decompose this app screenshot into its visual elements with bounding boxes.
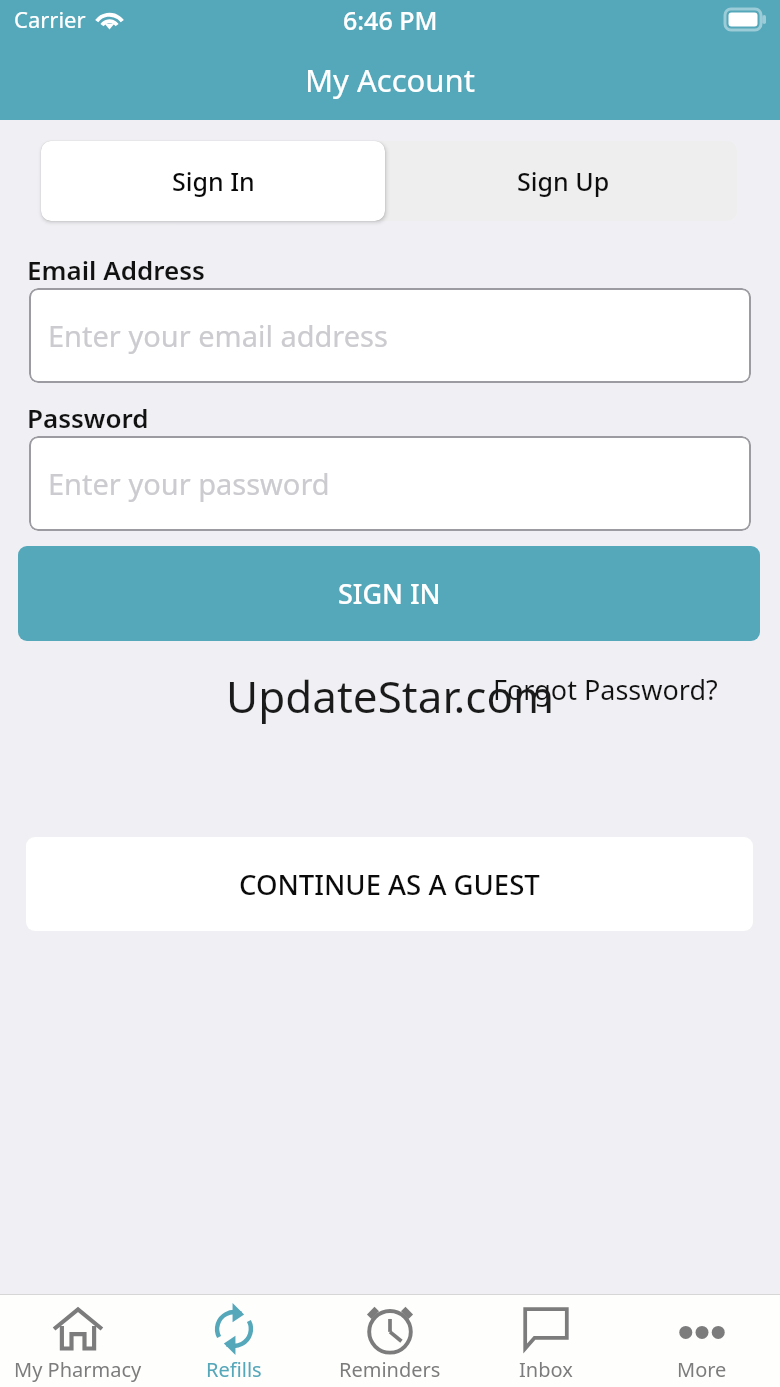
staticText: Refills xyxy=(206,1356,262,1383)
button[interactable]: Sign Up xyxy=(389,141,737,221)
button[interactable]: Forgot Password? xyxy=(493,671,718,708)
staticText: Email Address xyxy=(27,252,205,287)
staticText: Sign In xyxy=(172,164,255,198)
staticText: 6:46 PM xyxy=(343,3,438,37)
button[interactable]: Inbox xyxy=(468,1295,624,1387)
button[interactable]: More xyxy=(624,1295,780,1387)
staticText: Sign Up xyxy=(517,164,610,198)
staticText: My Pharmacy xyxy=(14,1356,142,1383)
staticText: Inbox xyxy=(519,1356,573,1383)
staticText: CONTINUE AS A GUEST xyxy=(239,866,540,903)
button[interactable] xyxy=(41,141,389,221)
staticText: Password xyxy=(27,400,149,435)
other: Battery full xyxy=(725,9,766,30)
other: Wi-Fi signal xyxy=(94,7,125,31)
staticText: SIGN IN xyxy=(338,575,441,612)
button[interactable]: Refills xyxy=(156,1295,312,1387)
staticText: Enter your email address xyxy=(48,316,388,355)
staticText: Reminders xyxy=(339,1356,441,1383)
staticText: More xyxy=(677,1356,727,1383)
button[interactable]: My Pharmacy xyxy=(0,1295,156,1387)
staticText: Carrier xyxy=(14,4,86,34)
button[interactable]: CONTINUE AS A GUEST xyxy=(26,837,753,931)
staticText: My Account xyxy=(305,59,475,101)
button[interactable]: Sign In xyxy=(41,141,385,221)
button[interactable]: SIGN IN xyxy=(18,546,760,641)
staticText: UpdateStar.com xyxy=(226,666,555,726)
button[interactable]: Reminders xyxy=(312,1295,468,1387)
staticText: Enter your password xyxy=(48,464,330,503)
button[interactable]: Enter your email address xyxy=(29,288,751,383)
button[interactable]: Enter your password xyxy=(29,436,751,531)
